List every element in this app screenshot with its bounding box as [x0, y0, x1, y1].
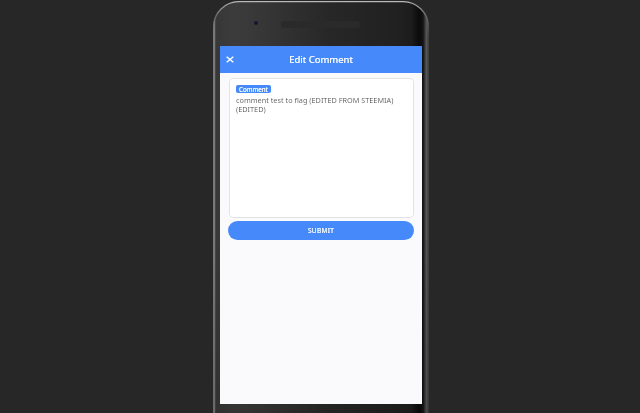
staticText: SUBMIT	[308, 226, 335, 235]
button[interactable]: SUBMIT	[228, 221, 414, 240]
staticText: Edit Comment	[289, 53, 353, 66]
button[interactable]: Comment	[229, 78, 414, 218]
staticText: comment test to flag (EDITED FROM STEEMI…	[236, 95, 407, 114]
button[interactable]: Close	[219, 49, 240, 70]
staticText: Comment	[239, 85, 268, 93]
